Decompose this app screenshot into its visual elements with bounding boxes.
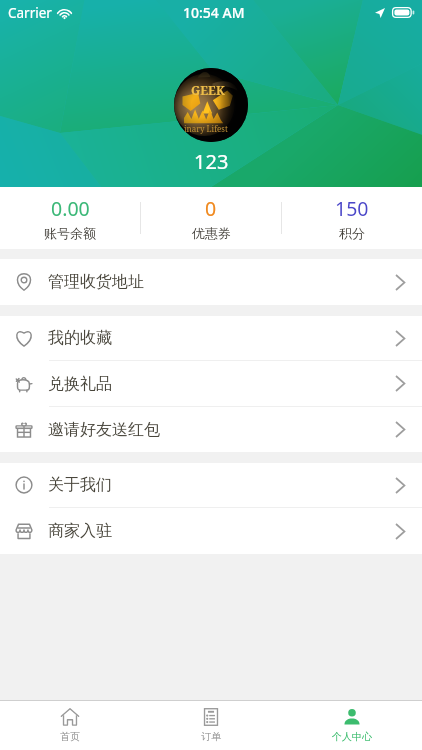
button[interactable]: 兑换礼品 xyxy=(0,361,422,406)
staticText: 邀请好友送红包 xyxy=(48,420,160,440)
button[interactable]: 150 xyxy=(282,187,422,249)
staticText: 管理收货地址 xyxy=(48,272,144,292)
staticText: Carrier xyxy=(8,4,52,22)
button[interactable]: 0.00 xyxy=(0,187,140,249)
staticText: 商家入驻 xyxy=(48,521,112,541)
staticText: 0.00 xyxy=(51,195,90,222)
staticText: GEEK xyxy=(191,82,225,98)
staticText: 10:54 AM xyxy=(183,3,245,22)
staticText: 积分 xyxy=(339,225,365,241)
staticText: 我的收藏 xyxy=(48,328,112,348)
button[interactable]: 邀请好友送红包 xyxy=(0,407,422,452)
button[interactable]: 我的收藏 xyxy=(0,316,422,360)
button[interactable]: 首页 xyxy=(0,701,140,750)
button[interactable]: 订单 xyxy=(140,701,281,750)
staticText: 兑换礼品 xyxy=(48,374,112,394)
staticText: 账号余额 xyxy=(44,225,96,241)
button[interactable]: 商家入驻 xyxy=(0,508,422,554)
staticText: 首页 xyxy=(60,730,80,743)
button[interactable]: 0 xyxy=(141,187,281,249)
button[interactable]: 管理收货地址 xyxy=(0,259,422,305)
staticText: 关于我们 xyxy=(48,475,112,495)
staticText: 150 xyxy=(335,195,369,222)
staticText: 0 xyxy=(205,195,217,222)
button[interactable]: 个人中心 xyxy=(281,701,422,750)
staticText: 订单 xyxy=(201,730,221,743)
staticText: 优惠券 xyxy=(192,225,231,241)
staticText: 个人中心 xyxy=(332,730,372,743)
staticText: inary Lifest xyxy=(184,123,228,134)
staticText: 123 xyxy=(194,148,229,175)
button[interactable]: 关于我们 xyxy=(0,463,422,507)
